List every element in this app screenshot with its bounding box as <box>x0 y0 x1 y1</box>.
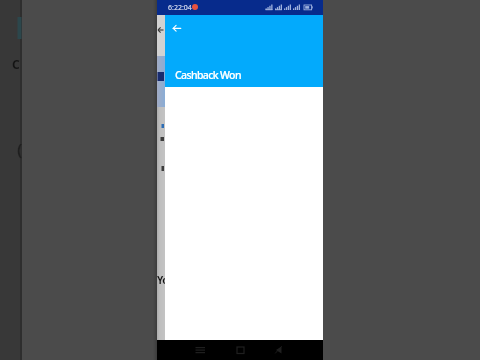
button[interactable]: Recent apps <box>195 344 206 355</box>
button[interactable]: Home <box>235 344 246 355</box>
staticText: C <box>12 56 20 72</box>
button[interactable]: Back <box>273 344 284 355</box>
staticText: Yo <box>157 273 169 287</box>
staticText: 6:22:04 <box>168 3 192 13</box>
button[interactable]: Back <box>169 18 189 38</box>
staticText: ( <box>17 139 23 161</box>
staticText: Cashback Won <box>175 68 241 82</box>
